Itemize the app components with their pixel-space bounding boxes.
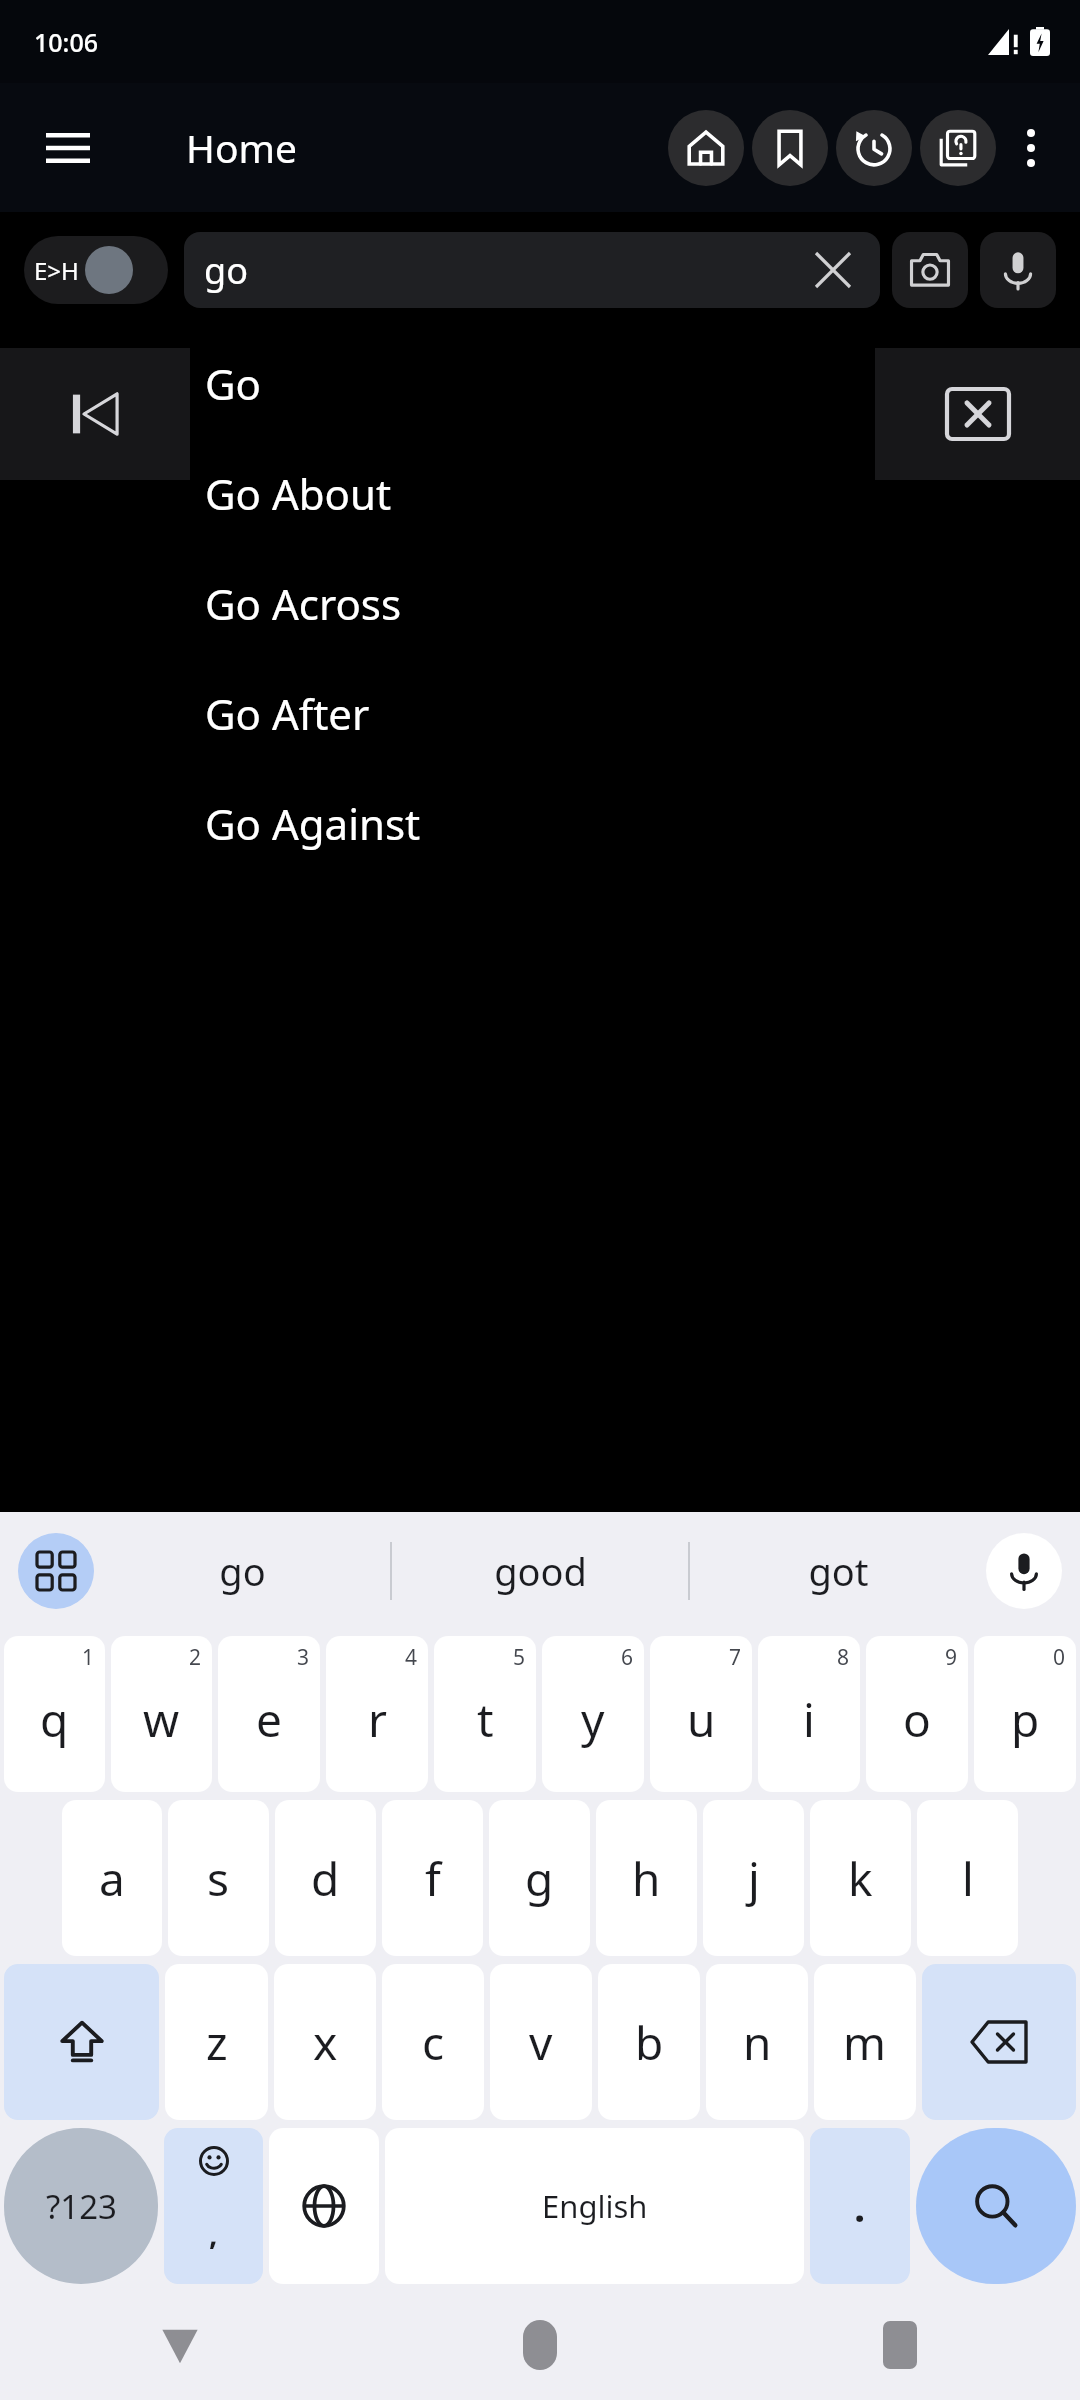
button[interactable]: Home	[360, 2290, 720, 2400]
button[interactable]: 1	[4, 1636, 105, 1792]
staticText: ,	[209, 2213, 218, 2254]
staticText: ?123	[46, 2184, 117, 2229]
staticText: o	[903, 1688, 931, 1751]
button[interactable]: 6	[542, 1636, 644, 1792]
button[interactable]: E>H	[24, 236, 168, 304]
button[interactable]: h	[596, 1800, 697, 1956]
staticText: got	[808, 1545, 869, 1597]
button[interactable]: x	[274, 1964, 376, 2120]
button[interactable]: Help	[920, 110, 996, 186]
button[interactable]: English	[385, 2128, 804, 2284]
staticText: E>H	[34, 254, 79, 287]
button[interactable]: Backspace	[922, 1964, 1076, 2120]
button[interactable]: c	[382, 1964, 484, 2120]
button[interactable]: j	[703, 1800, 804, 1956]
button[interactable]: Open navigation menu	[28, 108, 108, 188]
button[interactable]: 5	[434, 1636, 536, 1792]
staticText: go	[204, 246, 806, 295]
staticText: 8	[837, 1643, 850, 1672]
staticText: b	[635, 2011, 664, 2074]
button[interactable]: More options	[1000, 117, 1062, 179]
staticText: v	[529, 2011, 553, 2074]
button[interactable]: Go Against	[0, 768, 1080, 878]
staticText: s	[207, 1847, 230, 1910]
staticText: 9	[945, 1643, 958, 1672]
staticText: 2	[189, 1643, 202, 1672]
button[interactable]: Voice search	[980, 232, 1056, 308]
button[interactable]: 7	[650, 1636, 752, 1792]
button[interactable]: Back	[0, 2290, 360, 2400]
staticText: r	[368, 1688, 387, 1751]
staticText: m	[843, 2011, 887, 2074]
button[interactable]: Go About	[0, 438, 1080, 548]
button[interactable]: ?123	[4, 2128, 158, 2284]
staticText: p	[1011, 1688, 1040, 1751]
staticText: Home	[186, 121, 297, 174]
staticText: z	[206, 2011, 228, 2074]
button[interactable]: Go After	[0, 658, 1080, 768]
staticText: c	[422, 2011, 445, 2074]
button[interactable]: s	[168, 1800, 269, 1956]
staticText: 10:06	[34, 25, 99, 59]
staticText: u	[687, 1688, 716, 1751]
button[interactable]: k	[810, 1800, 911, 1956]
button[interactable]: Search by image	[892, 232, 968, 308]
button[interactable]: go	[184, 232, 880, 308]
staticText: Go Across	[205, 575, 402, 632]
staticText: i	[803, 1688, 815, 1751]
button[interactable]: Shift	[4, 1964, 159, 2120]
button[interactable]: 8	[758, 1636, 860, 1792]
button[interactable]: .	[810, 2128, 910, 2284]
staticText: g	[525, 1847, 554, 1910]
button[interactable]: 4	[326, 1636, 428, 1792]
button[interactable]: Close keyboard	[875, 348, 1080, 480]
staticText: 6	[621, 1643, 634, 1672]
button[interactable]: Emoji and comma	[164, 2128, 263, 2284]
staticText: j	[748, 1847, 760, 1910]
staticText: q	[40, 1688, 69, 1751]
button[interactable]: n	[706, 1964, 808, 2120]
button[interactable]: l	[917, 1800, 1018, 1956]
button[interactable]: Search	[916, 2128, 1076, 2284]
button[interactable]: Change language	[269, 2128, 379, 2284]
staticText: h	[632, 1847, 661, 1910]
button[interactable]: f	[382, 1800, 483, 1956]
button[interactable]: 3	[218, 1636, 320, 1792]
button[interactable]: Previous	[0, 348, 190, 480]
button[interactable]: Go Across	[0, 548, 1080, 658]
button[interactable]: Bookmarks	[752, 110, 828, 186]
button[interactable]: 2	[111, 1636, 212, 1792]
staticText: 0	[1053, 1643, 1066, 1672]
button[interactable]: good	[392, 1512, 688, 1630]
button[interactable]: Home	[668, 110, 744, 186]
staticText: e	[256, 1688, 282, 1751]
button[interactable]: Voice input	[986, 1533, 1062, 1609]
staticText: x	[313, 2011, 338, 2074]
button[interactable]: got	[690, 1512, 986, 1630]
button[interactable]: History	[836, 110, 912, 186]
staticText: Go After	[205, 685, 370, 742]
button[interactable]: 0	[974, 1636, 1076, 1792]
staticText: l	[962, 1847, 974, 1910]
staticText: t	[477, 1688, 494, 1751]
button[interactable]: a	[62, 1800, 162, 1956]
staticText: y	[581, 1688, 605, 1751]
button[interactable]: Go	[0, 328, 1080, 438]
staticText: good	[494, 1545, 587, 1597]
button[interactable]: d	[275, 1800, 376, 1956]
button[interactable]: Keyboard toolbar	[18, 1533, 94, 1609]
button[interactable]: go	[94, 1512, 390, 1630]
button[interactable]: Clear query	[806, 243, 860, 297]
button[interactable]: g	[489, 1800, 590, 1956]
staticText: Go About	[205, 465, 392, 522]
button[interactable]: m	[814, 1964, 916, 2120]
staticText: Go	[205, 355, 261, 412]
button[interactable]: z	[165, 1964, 268, 2120]
button[interactable]: b	[598, 1964, 700, 2120]
button[interactable]: 9	[866, 1636, 968, 1792]
button[interactable]: v	[490, 1964, 592, 2120]
staticText: go	[219, 1545, 266, 1597]
staticText: d	[311, 1847, 340, 1910]
staticText: w	[143, 1688, 180, 1751]
button[interactable]: Recent apps	[720, 2290, 1080, 2400]
